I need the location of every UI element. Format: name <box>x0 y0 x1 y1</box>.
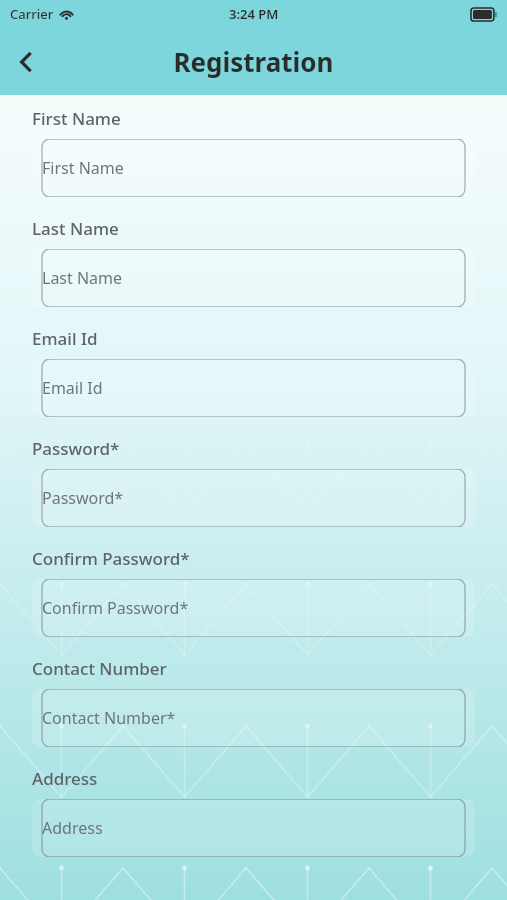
staticText: 3:24 PM <box>229 5 279 23</box>
button[interactable]: Confirm Password* <box>32 579 475 637</box>
staticText: First Name <box>32 107 121 130</box>
button[interactable]: Last Name <box>32 249 475 307</box>
staticText: Email Id <box>32 327 98 350</box>
staticText: Address <box>42 817 103 839</box>
staticText: First Name <box>42 157 124 179</box>
staticText: Email Id <box>42 377 103 399</box>
staticText: Registration <box>0 44 507 79</box>
staticText: Confirm Password* <box>42 597 189 619</box>
staticText: Last Name <box>32 217 119 240</box>
button[interactable]: Email Id <box>32 359 475 417</box>
staticText: Last Name <box>42 267 123 289</box>
staticText: Address <box>32 767 98 790</box>
button[interactable]: Address <box>32 799 475 857</box>
button[interactable]: Back <box>0 36 52 88</box>
staticText: Password* <box>32 437 120 460</box>
staticText: Confirm Password* <box>32 547 190 570</box>
staticText: Carrier <box>10 5 54 23</box>
staticText: Contact Number* <box>42 707 176 729</box>
button[interactable]: Contact Number* <box>32 689 475 747</box>
staticText: Contact Number <box>32 657 167 680</box>
button[interactable]: Password* <box>32 469 475 527</box>
staticText: Password* <box>42 487 124 509</box>
button[interactable]: First Name <box>32 139 475 197</box>
